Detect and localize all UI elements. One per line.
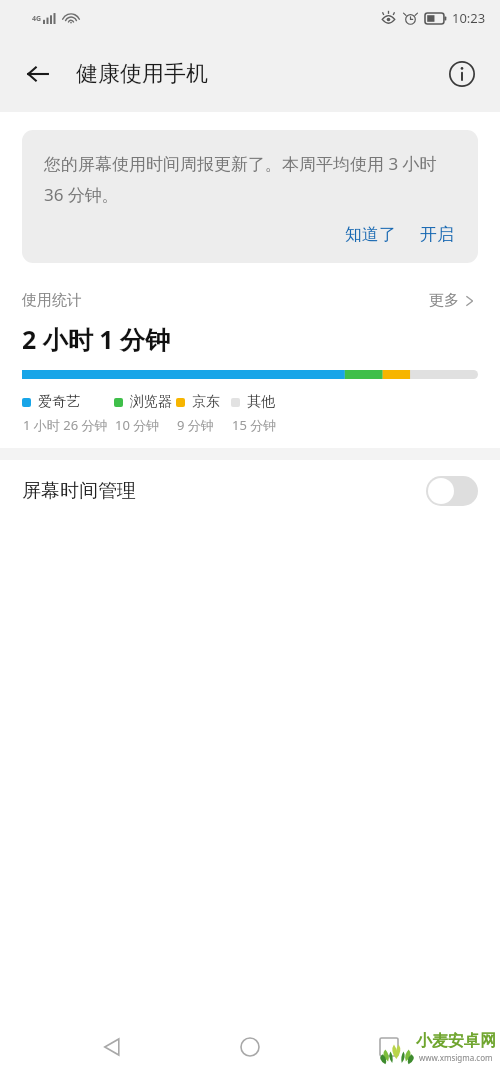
button[interactable]: Screen time management toggle	[426, 476, 478, 506]
staticText: 9 分钟	[177, 416, 214, 434]
staticText: 健康使用手机	[76, 60, 208, 88]
staticText: 浏览器	[130, 393, 172, 411]
staticText: www.xmsigma.com	[419, 1052, 493, 1063]
button[interactable]: Home	[223, 1020, 277, 1074]
staticText: 小麦安卓网	[416, 1031, 496, 1051]
button[interactable]: Info	[438, 50, 486, 98]
staticText: 10:23	[452, 9, 486, 27]
staticText: 15 分钟	[232, 416, 277, 434]
button[interactable]: 您的屏幕使用时间周报更新了。本周平均使用 3 小时 36 分钟。	[22, 130, 478, 263]
staticText: 其他	[247, 393, 275, 411]
button[interactable]: 屏幕时间管理	[0, 460, 500, 522]
staticText: 更多	[429, 291, 459, 310]
staticText: 您的屏幕使用时间周报更新了。本周平均使用 3 小时 36 分钟。	[44, 152, 458, 206]
staticText: 4G	[32, 14, 42, 24]
staticText: 2 小时 1 分钟	[22, 322, 171, 356]
button[interactable]: 知道了	[341, 220, 400, 249]
staticText: 屏幕时间管理	[22, 479, 136, 503]
staticText: 1 小时 26 分钟	[23, 416, 108, 434]
staticText: 爱奇艺	[38, 393, 80, 411]
button[interactable]: Back	[14, 50, 62, 98]
staticText: 开启	[420, 224, 454, 245]
button[interactable]: 开启	[416, 220, 458, 249]
staticText: 京东	[192, 393, 220, 411]
staticText: 10 分钟	[115, 416, 160, 434]
staticText: 知道了	[345, 224, 396, 245]
button[interactable]: Recents	[362, 1020, 416, 1074]
button[interactable]: 更多	[425, 287, 478, 314]
button[interactable]: Back	[85, 1020, 139, 1074]
staticText: 使用统计	[22, 291, 82, 310]
